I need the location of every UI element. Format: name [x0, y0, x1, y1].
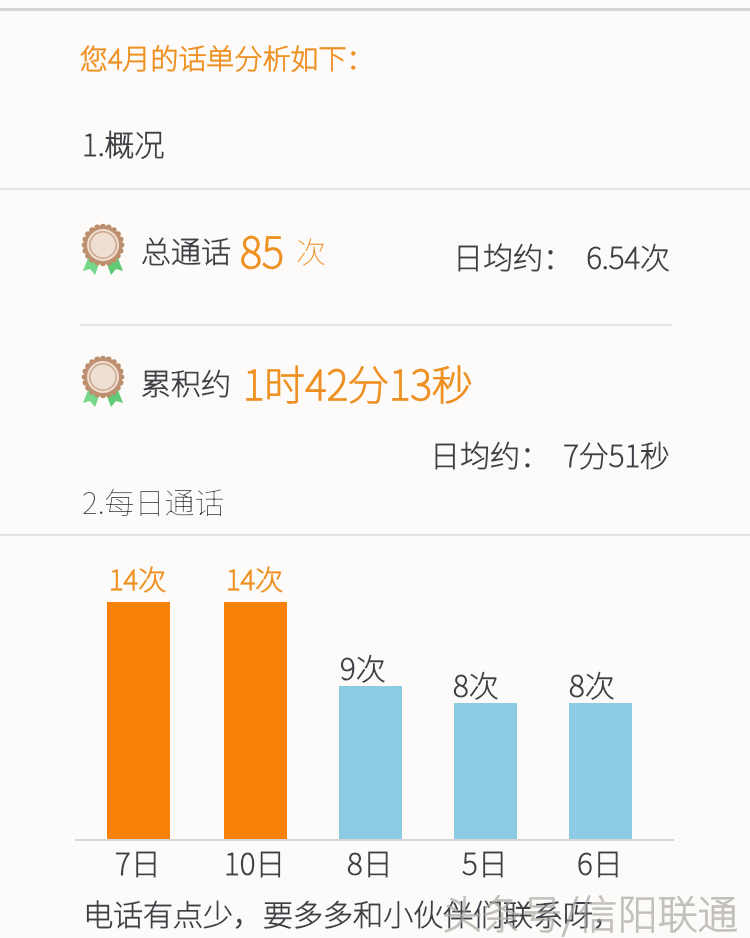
staticText: 日均约： 6.54次: [453, 234, 671, 277]
staticText: 1时42分13秒: [243, 352, 473, 411]
staticText: 电话有点少，要多多和小伙伴们联系呀，: [83, 891, 623, 934]
staticText: 14次: [109, 558, 167, 599]
staticText: 8日: [347, 840, 393, 883]
staticText: 10日: [224, 840, 286, 883]
staticText: 累积约: [141, 360, 231, 403]
staticText: 5日: [462, 840, 508, 883]
staticText: 7日: [115, 840, 161, 883]
staticText: 您4月的话单分析如下：: [80, 37, 375, 78]
staticText: 14次: [226, 558, 284, 599]
staticText: 日均约： 7分51秒: [430, 432, 671, 475]
staticText: 头条号/信阳联通: [442, 883, 738, 938]
staticText: 6日: [577, 840, 623, 883]
staticText: 85: [240, 219, 284, 280]
staticText: 8次: [453, 662, 499, 705]
staticText: 2.每日通话: [82, 479, 225, 522]
staticText: 次: [296, 228, 326, 271]
staticText: 1.概况: [82, 121, 165, 164]
staticText: 8次: [569, 662, 615, 705]
staticText: 总通话: [141, 228, 231, 271]
staticText: 9次: [340, 645, 386, 688]
